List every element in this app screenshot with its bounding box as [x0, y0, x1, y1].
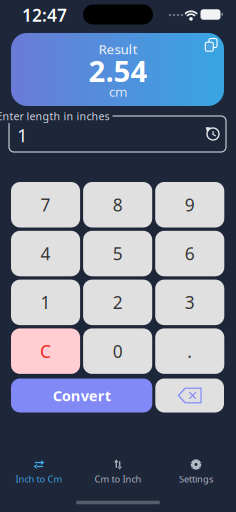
button[interactable]: . [155, 328, 224, 374]
staticText: 1 [17, 123, 28, 147]
button[interactable]: 3 [155, 280, 224, 325]
staticText: Result [98, 40, 137, 58]
button[interactable]: 5 [83, 231, 152, 276]
staticText: 9 [185, 193, 195, 216]
button[interactable]: Backspace [155, 378, 224, 412]
button[interactable]: 1 [11, 280, 80, 325]
staticText: Inch to Cm [15, 473, 62, 485]
button[interactable]: 7 [11, 182, 80, 227]
staticText: . [187, 340, 192, 363]
button[interactable]: 0 [83, 328, 152, 374]
button[interactable]: Convert [11, 378, 152, 412]
staticText: Cm to Inch [94, 473, 141, 485]
button[interactable]: Settings [157, 454, 235, 488]
button[interactable]: Cm to Inch [79, 454, 157, 488]
staticText: 7 [40, 193, 50, 216]
button[interactable]: 9 [155, 182, 224, 227]
button[interactable]: 6 [155, 231, 224, 276]
button[interactable]: 2 [83, 280, 152, 325]
button[interactable]: 8 [83, 182, 152, 227]
staticText: Convert [53, 386, 111, 405]
staticText: Enter length in inches [0, 109, 109, 123]
button[interactable]: Copy result [200, 34, 222, 56]
button[interactable]: 4 [11, 231, 80, 276]
button[interactable]: Inch to Cm [0, 454, 78, 488]
staticText: 3 [185, 291, 195, 314]
button[interactable]: History [202, 123, 224, 145]
staticText: C [40, 340, 51, 363]
staticText: 2.54 [88, 51, 147, 90]
staticText: Settings [179, 473, 213, 485]
staticText: cm [109, 83, 127, 100]
staticText: 4 [40, 242, 50, 265]
staticText: 12:47 [22, 3, 67, 26]
staticText: 6 [185, 242, 195, 265]
staticText: 5 [113, 242, 123, 265]
staticText: 0 [113, 340, 123, 363]
staticText: 1 [40, 291, 50, 314]
staticText: 8 [113, 193, 123, 216]
button[interactable]: C [11, 328, 80, 374]
staticText: 2 [113, 291, 123, 314]
